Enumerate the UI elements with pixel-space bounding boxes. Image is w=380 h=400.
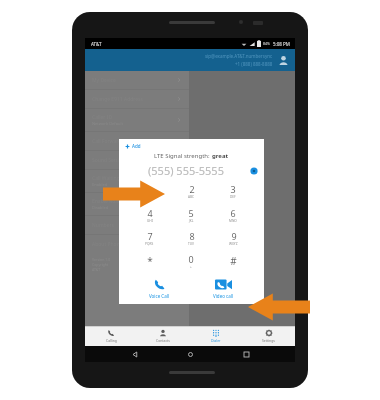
button[interactable]: 5 [170,203,212,226]
staticText: 5:08 PM [273,41,290,47]
button[interactable]: Numbers [85,216,189,234]
button[interactable]: Backspace [249,166,258,175]
button[interactable]: 0 [170,249,212,272]
staticText: 7 [147,230,153,242]
staticText: GHI [147,219,153,223]
staticText: Contacts [156,338,170,343]
staticText: TUV [188,242,195,246]
staticText: 0 [188,253,194,265]
button[interactable]: Home [184,348,196,360]
staticText: WXYZ [229,242,238,246]
button[interactable]: Call Waiting [85,170,189,192]
staticText: 4 [147,207,153,219]
button[interactable]: 6 [212,203,254,226]
staticText: (555) 555-5555 [148,163,224,177]
staticText: DEF [230,195,236,199]
button[interactable]: # [212,249,254,272]
button[interactable]: Dialer [189,326,242,346]
staticText: sip@example.AT&T.numbersync [205,53,273,59]
button[interactable]: Add [125,143,141,149]
staticText: Add [132,143,141,149]
staticText: 9 [231,230,237,242]
staticText: MNO [229,219,237,223]
staticText: Sound Settings [92,157,128,164]
button[interactable]: 4 [129,203,170,226]
button[interactable]: Contacts [137,326,189,346]
button[interactable]: Enable Roaming [85,193,189,215]
staticText: Call Waiting [92,175,120,182]
button[interactable]: Recents [240,348,252,360]
staticText: 5 [188,207,194,219]
staticText: 2 [189,183,195,195]
button[interactable]: 9 [212,226,254,249]
staticText: 1 [147,185,153,197]
button[interactable]: Account [277,54,290,67]
staticText: Calling [106,338,117,343]
staticText: LTE Signal strength: [154,152,212,160]
button[interactable]: Add [119,139,264,304]
staticText: Settings [262,338,275,343]
staticText: JKL [189,219,194,223]
staticText: PQRS [145,242,154,246]
button[interactable]: * [129,249,170,272]
staticText: +1 (888) 888-8888 [235,61,273,67]
staticText: 6 [230,207,236,219]
button[interactable]: Voice Call [127,272,191,304]
button[interactable]: 7 [129,226,170,249]
button[interactable]: 8 [170,226,212,249]
staticText: About Phone [92,241,123,248]
staticText: # [230,254,237,268]
staticText: Voice Call [149,293,170,299]
button[interactable]: Call Forwarding [85,132,189,150]
staticText: 3 [230,183,236,195]
staticText: * [147,254,153,268]
staticText: AT&T [91,41,102,47]
button[interactable]: Sound Settings [85,151,189,169]
staticText: Enable Roaming [92,198,131,205]
button[interactable]: Video call [191,272,256,304]
button[interactable]: 2 [170,179,212,203]
staticText: Video call [213,293,234,299]
staticText: Dialer [211,338,221,343]
button[interactable]: Settings [242,326,295,346]
button[interactable]: 3 [212,179,254,203]
staticText: 8 [189,230,195,242]
staticText: great [212,152,229,160]
staticText: ABC [188,195,195,199]
button[interactable]: Calling [85,326,137,346]
button[interactable]: Back [129,348,141,360]
staticText: + [190,265,192,269]
staticText: Call Forwarding [92,138,129,145]
button[interactable]: About Phone [85,235,189,253]
button[interactable]: 1 [129,179,170,203]
staticText: 84% [263,41,270,46]
